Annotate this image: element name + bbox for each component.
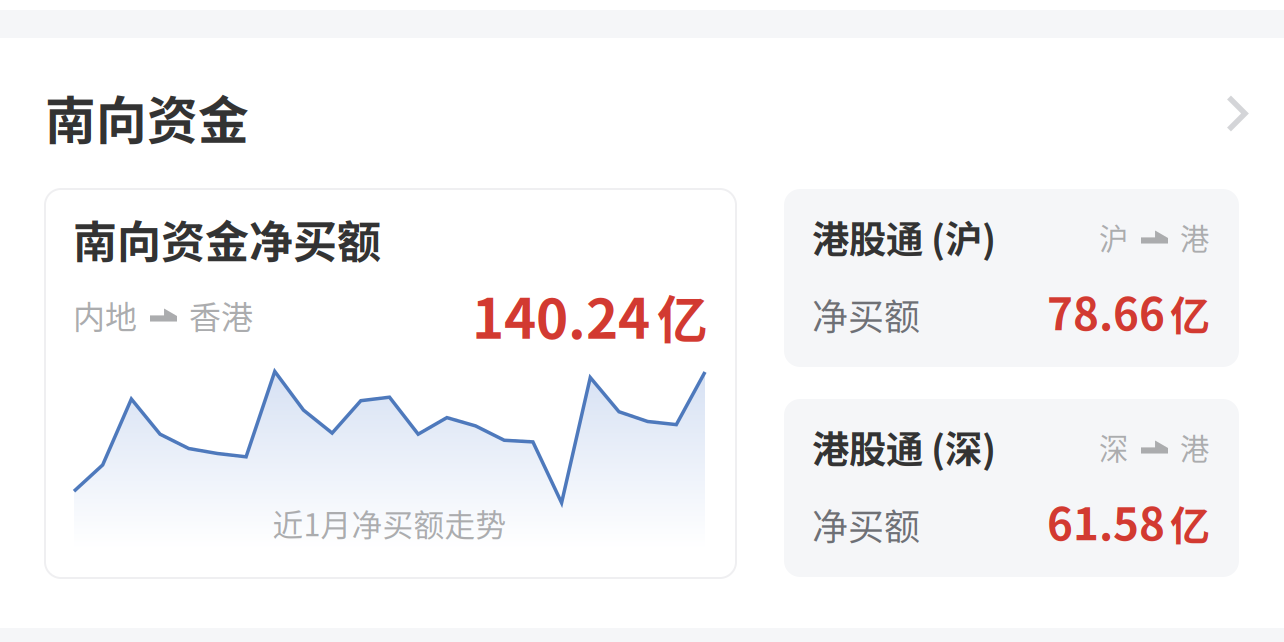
staticText: 香港 — [189, 292, 253, 338]
staticText: 沪 — [1099, 216, 1128, 258]
staticText: 内地 — [73, 292, 137, 338]
staticText: 南向资金净买额 — [73, 207, 381, 271]
button[interactable]: 南向资金 — [0, 38, 1284, 189]
staticText: 南向资金 — [45, 80, 249, 154]
staticText: 港 — [1180, 216, 1209, 258]
staticText: 净买额 — [812, 288, 920, 340]
staticText: 亿 — [1170, 284, 1210, 342]
staticText: 78.66 — [1047, 279, 1165, 343]
staticText: 61.58 — [1047, 489, 1165, 553]
button[interactable]: 近1月净买额走势 — [45, 189, 736, 578]
button[interactable]: 港股通 (深) — [784, 399, 1239, 577]
staticText: 近1月净买额走势 — [272, 501, 506, 545]
staticText: 净买额 — [812, 498, 920, 550]
staticText: 深 — [1099, 426, 1128, 468]
staticText: 港 — [1180, 426, 1209, 468]
staticText: 港股通 (深) — [812, 420, 996, 474]
staticText: 亿 — [1170, 494, 1210, 552]
button[interactable]: 港股通 (沪) — [784, 189, 1239, 367]
staticText: 140.24 — [472, 275, 650, 355]
staticText: 港股通 (沪) — [812, 210, 996, 264]
staticText: 亿 — [657, 280, 708, 353]
